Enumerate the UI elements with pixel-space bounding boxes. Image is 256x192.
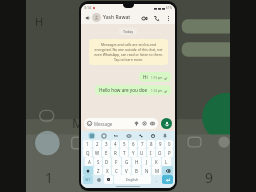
staticText: 4 — [114, 141, 117, 147]
button[interactable]: V — [122, 166, 131, 175]
button[interactable]: U — [138, 148, 146, 157]
button[interactable]: Hello how are you doe — [95, 85, 171, 95]
button[interactable]: G — [122, 157, 131, 166]
button[interactable]: H — [132, 157, 141, 166]
button[interactable]: Settings — [94, 175, 103, 184]
button[interactable]: Profile photo — [92, 13, 101, 22]
staticText: U — [140, 150, 144, 156]
button[interactable]: Z — [94, 166, 102, 175]
button[interactable]: X — [103, 166, 111, 175]
staticText: X — [106, 168, 109, 174]
button[interactable]: Key tool 2 — [112, 132, 119, 139]
button[interactable]: O — [156, 148, 164, 157]
button[interactable]: 1 — [83, 140, 92, 148]
button[interactable]: Back — [84, 14, 91, 21]
button[interactable]: Key tool 5 — [149, 132, 156, 139]
staticText: L — [165, 159, 168, 165]
button[interactable]: 2 — [93, 140, 101, 148]
staticText: K — [155, 159, 158, 165]
staticText: 8 — [150, 141, 153, 147]
button[interactable]: E — [102, 148, 110, 157]
staticText: 5 — [123, 141, 126, 147]
button[interactable]: Sticker — [104, 175, 113, 184]
button[interactable]: P — [165, 148, 173, 157]
button[interactable]: Yash Rawat — [103, 14, 140, 21]
button[interactable]: 8 — [147, 140, 155, 148]
button[interactable]: W — [93, 148, 101, 157]
staticText: 0 — [168, 141, 171, 147]
button[interactable]: 9 — [156, 140, 164, 148]
button[interactable]: I — [147, 148, 155, 157]
staticText: Message — [94, 121, 113, 127]
staticText: Mes — [72, 114, 98, 132]
staticText: Hello how are you doe — [99, 87, 148, 93]
button[interactable]: M — [152, 166, 161, 175]
staticText: O — [158, 150, 162, 156]
button[interactable]: N — [142, 166, 151, 175]
button[interactable]: 0 — [165, 140, 173, 148]
button[interactable]: T — [120, 148, 128, 157]
staticText: 3:14 — [84, 5, 91, 10]
staticText: H — [35, 14, 44, 29]
staticText: 9 — [205, 168, 214, 187]
button[interactable]: Toolbar — [88, 132, 95, 139]
staticText: 1:13 pm — [151, 76, 163, 80]
staticText: 1 — [86, 141, 89, 147]
button[interactable]: Key tool 1 — [100, 132, 107, 139]
staticText: !#1 — [85, 177, 91, 182]
button[interactable]: Voice call — [152, 14, 160, 22]
staticText: 6 — [132, 141, 135, 147]
button[interactable]: R — [111, 148, 119, 157]
button[interactable]: K — [152, 157, 161, 166]
button[interactable]: F — [112, 157, 121, 166]
staticText: H — [135, 159, 139, 165]
button[interactable]: Message — [84, 118, 158, 129]
button[interactable]: 5 — [120, 140, 128, 148]
button[interactable]: Enter — [162, 175, 173, 184]
button[interactable]: A — [85, 157, 93, 166]
staticText: C — [115, 168, 118, 174]
button[interactable]: B — [132, 166, 141, 175]
staticText: 7 — [141, 141, 144, 147]
button[interactable]: 7 — [138, 140, 146, 148]
staticText: V — [125, 168, 128, 174]
button[interactable]: Hi — [139, 72, 171, 82]
staticText: I — [150, 150, 152, 156]
button[interactable]: Voice message — [161, 118, 172, 129]
staticText: 1 — [45, 168, 54, 187]
staticText: English — [126, 177, 139, 182]
button[interactable]: J — [142, 157, 151, 166]
button[interactable]: Shift — [83, 166, 93, 175]
staticText: 2 — [84, 168, 93, 187]
staticText: D — [105, 159, 109, 165]
button[interactable]: Q — [83, 148, 92, 157]
button[interactable]: English — [114, 175, 151, 184]
staticText: M — [155, 168, 159, 174]
button[interactable]: !#1 — [83, 175, 93, 184]
button[interactable]: Key tool 4 — [137, 132, 144, 139]
button[interactable]: C — [112, 166, 121, 175]
staticText: G — [125, 159, 129, 165]
staticText: 9 — [159, 141, 162, 147]
button[interactable]: D — [103, 157, 111, 166]
staticText: 61% — [166, 6, 172, 10]
staticText: F — [115, 159, 118, 165]
button[interactable]: 6 — [129, 140, 137, 148]
staticText: N — [145, 168, 149, 174]
staticText: J — [146, 159, 148, 165]
staticText: S — [97, 159, 100, 165]
button[interactable]: Video call — [140, 14, 148, 22]
button[interactable]: 3 — [102, 140, 110, 148]
button[interactable]: Y — [129, 148, 137, 157]
staticText: Messages and calls are end-to-end encryp… — [93, 42, 164, 62]
button[interactable]: Key tool 6 — [161, 132, 168, 139]
button[interactable]: . — [152, 175, 161, 184]
button[interactable]: 4 — [111, 140, 119, 148]
button[interactable]: Key tool 3 — [125, 132, 132, 139]
button[interactable]: Backspace — [162, 166, 173, 175]
staticText: 3 — [105, 141, 108, 147]
button[interactable]: More options — [164, 14, 172, 22]
button[interactable]: L — [162, 157, 171, 166]
button[interactable]: S — [94, 157, 102, 166]
